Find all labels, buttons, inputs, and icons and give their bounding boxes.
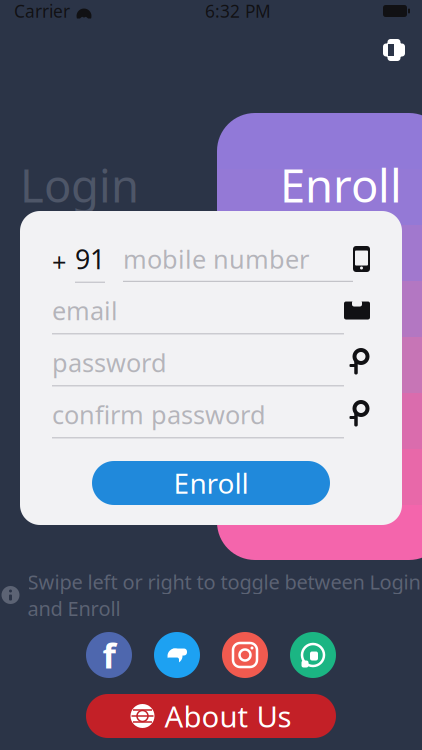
- button[interactable]: Instagram: [222, 632, 268, 678]
- button[interactable]: WhatsApp: [290, 632, 336, 678]
- staticText: 6:32 PM: [205, 0, 271, 22]
- staticText: confirm password: [52, 398, 266, 431]
- staticText: f: [102, 632, 115, 678]
- staticText: Carrier: [14, 0, 70, 22]
- button[interactable]: Enroll: [92, 461, 330, 505]
- staticText: password: [52, 346, 167, 379]
- staticText: Swipe left or right to toggle between Lo…: [27, 568, 420, 621]
- staticText: mobile number: [123, 242, 309, 276]
- staticText: Enroll: [173, 464, 248, 502]
- button[interactable]: Twitter: [154, 632, 200, 678]
- staticText: Login: [20, 155, 139, 215]
- staticText: About Us: [164, 696, 291, 735]
- button[interactable]: Toggle theme: [372, 28, 416, 72]
- button[interactable]: Facebook: [86, 632, 132, 678]
- button[interactable]: About Us: [86, 694, 336, 738]
- staticText: Enroll: [280, 155, 402, 215]
- staticText: email: [52, 294, 118, 327]
- staticText: 91: [75, 241, 105, 277]
- staticText: +: [52, 245, 66, 279]
